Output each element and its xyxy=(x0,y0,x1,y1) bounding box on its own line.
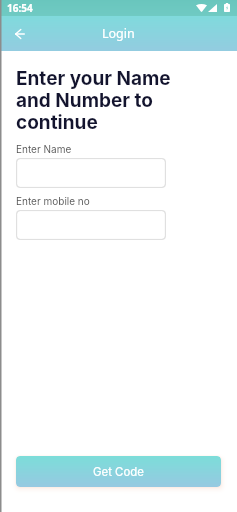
button[interactable] xyxy=(16,158,166,188)
staticText: Enter your Name and Number to continue xyxy=(16,67,198,133)
button[interactable]: Get Code xyxy=(16,456,221,487)
staticText: 16:54 xyxy=(7,1,33,15)
staticText: Login xyxy=(102,25,135,42)
button[interactable]: Back xyxy=(9,23,31,45)
staticText: Get Code xyxy=(93,465,144,479)
staticText: Enter mobile no xyxy=(16,195,90,207)
button[interactable] xyxy=(16,210,166,240)
staticText: Enter Name xyxy=(16,143,72,155)
